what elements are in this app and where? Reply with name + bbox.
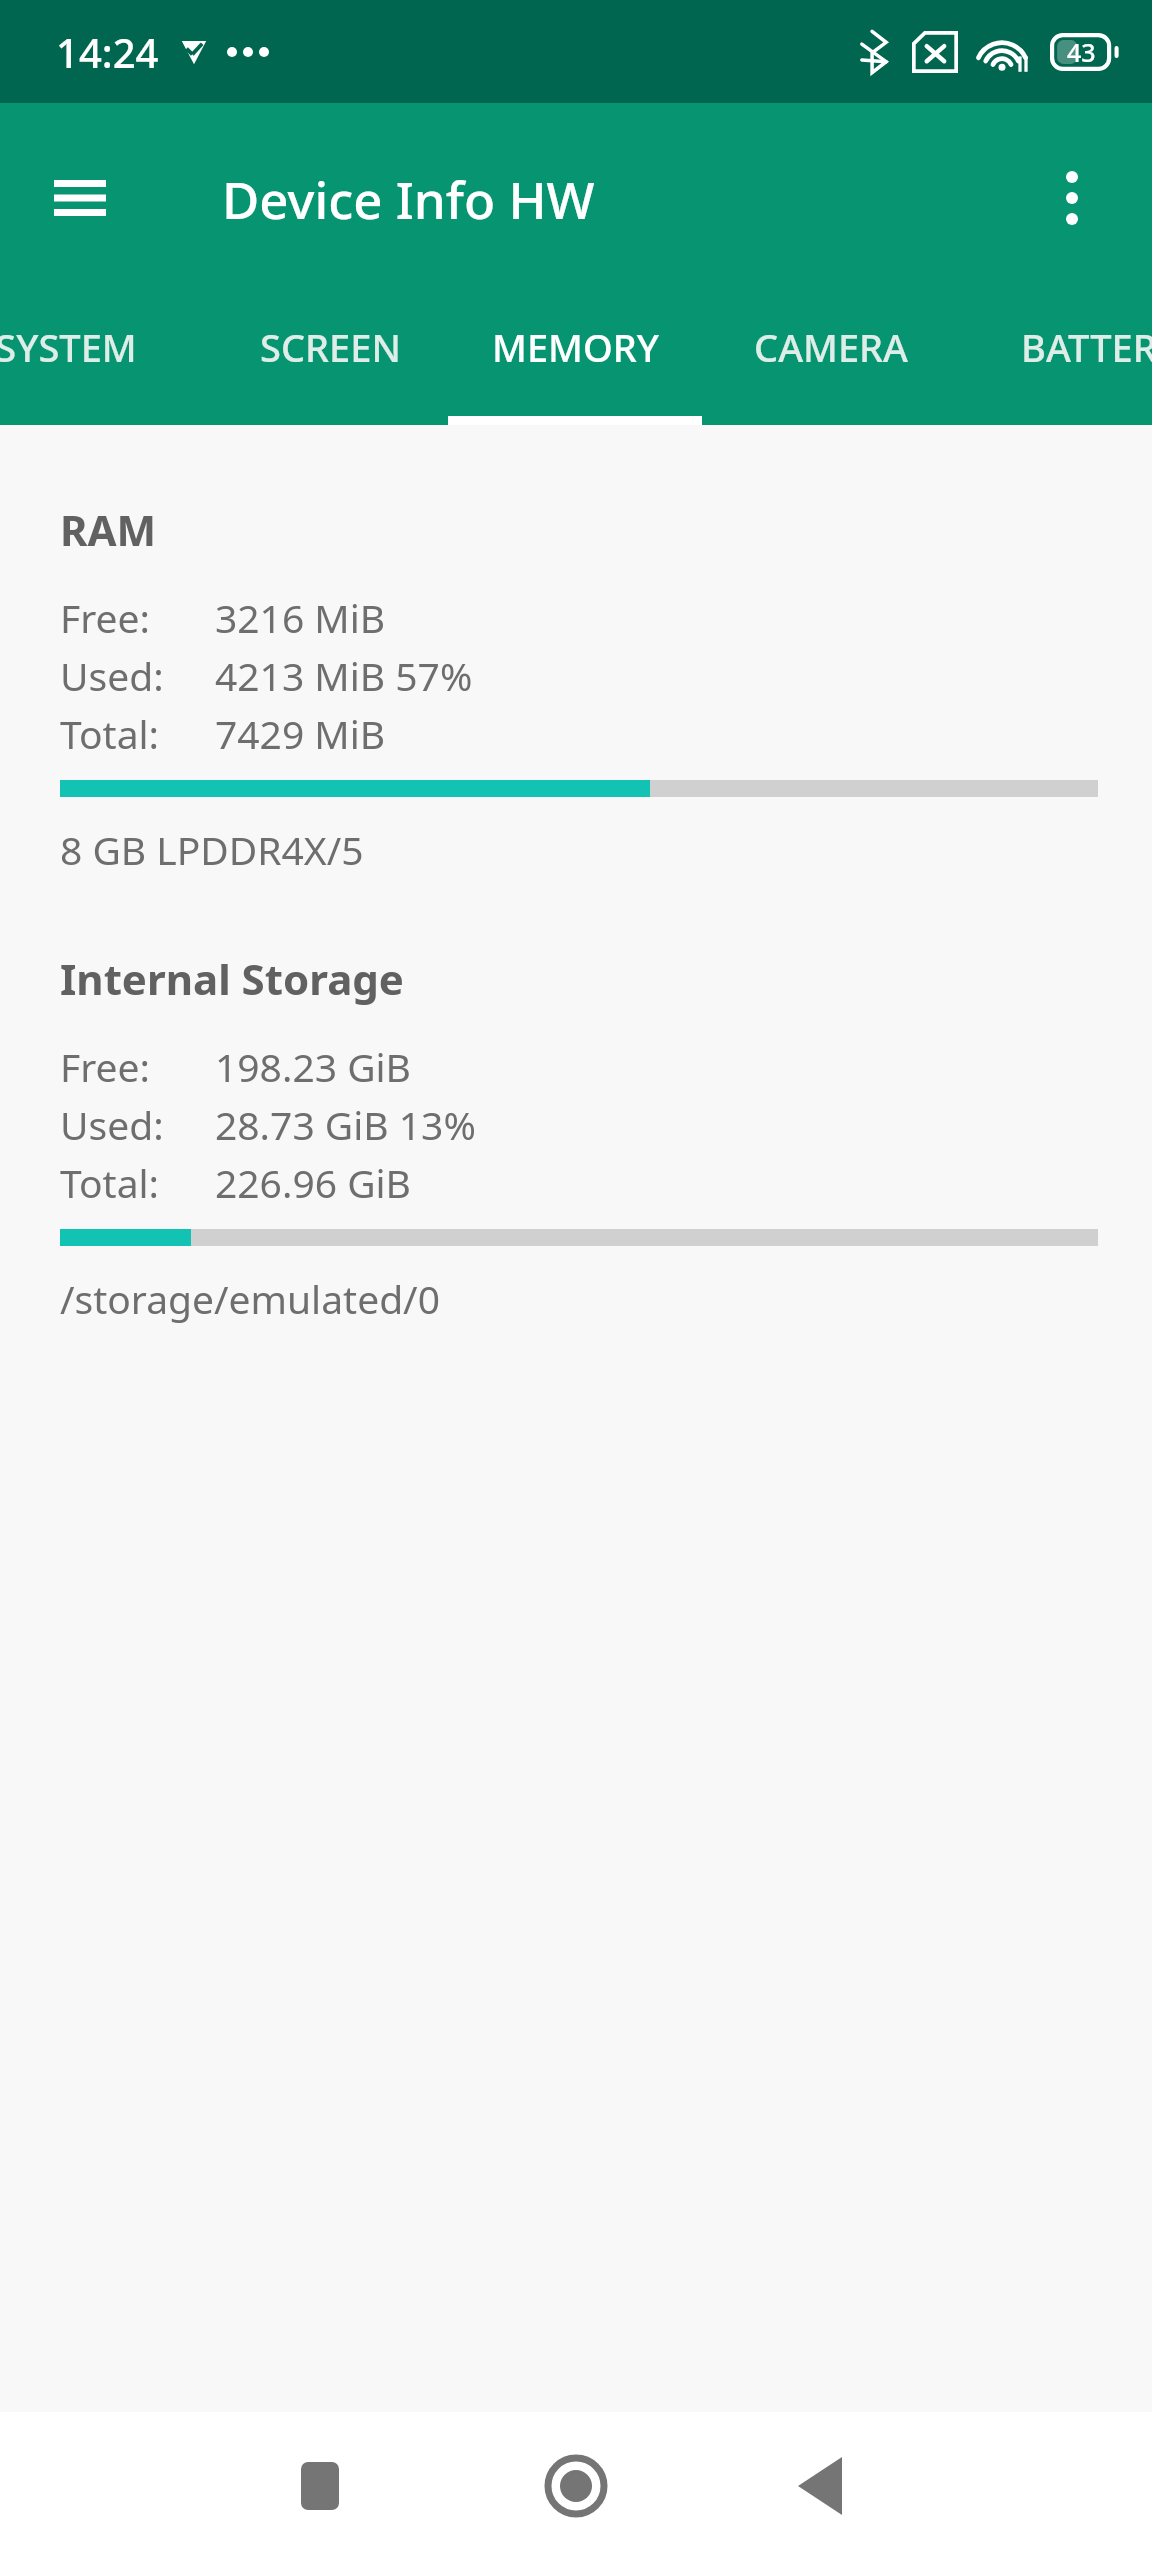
staticText: RAM — [60, 501, 157, 558]
staticText: Free: — [60, 1040, 215, 1093]
button[interactable]: SYSTEM — [0, 293, 212, 425]
button[interactable]: Open navigation menu — [32, 150, 128, 246]
staticText: 198.23 GiB — [215, 1040, 411, 1093]
staticText: 8 GB LPDDR4X/5 — [60, 823, 364, 876]
staticText: /storage/emulated/0 — [60, 1272, 440, 1325]
staticText: 14:24 — [56, 25, 159, 79]
staticText: Used: — [60, 649, 215, 702]
button[interactable]: SCREEN — [212, 293, 448, 425]
staticText: Device Info HW — [222, 164, 595, 233]
staticText: BATTERY — [1021, 321, 1152, 373]
staticText: CAMERA — [754, 321, 908, 373]
button[interactable]: Recent apps — [250, 2416, 390, 2556]
staticText: Internal Storage — [60, 950, 404, 1007]
staticText: 226.96 GiB — [215, 1156, 411, 1209]
button[interactable]: MEMORY — [448, 293, 702, 425]
staticText: MEMORY — [492, 321, 659, 373]
staticText: Total: — [60, 707, 215, 760]
staticText: 3216 MiB — [215, 591, 386, 644]
staticText: 43 — [1067, 35, 1096, 69]
staticText: 28.73 GiB 13% — [215, 1098, 476, 1151]
button[interactable]: Back — [750, 2416, 890, 2556]
staticText: Free: — [60, 591, 215, 644]
button[interactable]: CAMERA — [702, 293, 960, 425]
staticText: 4213 MiB 57% — [215, 649, 473, 702]
button[interactable]: More options — [1024, 150, 1120, 246]
staticText: 7429 MiB — [215, 707, 386, 760]
staticText: SYSTEM — [0, 321, 137, 373]
staticText: Total: — [60, 1156, 215, 1209]
staticText: SCREEN — [260, 321, 401, 373]
button[interactable]: BATTERY — [960, 293, 1152, 425]
staticText: Used: — [60, 1098, 215, 1151]
button[interactable]: Home — [506, 2416, 646, 2556]
